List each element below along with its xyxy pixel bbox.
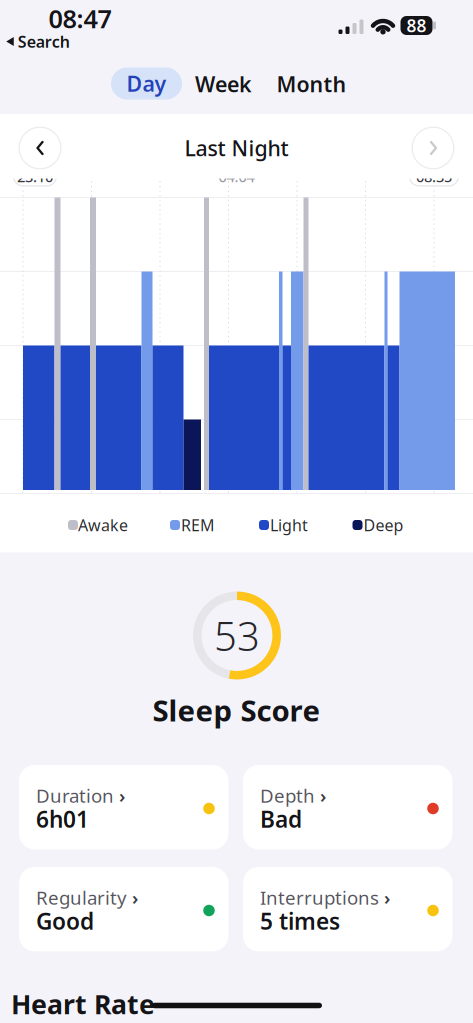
button[interactable]: Month xyxy=(276,70,346,98)
staticText: Week xyxy=(195,70,252,98)
staticText: Search xyxy=(18,31,70,52)
staticText: Duration xyxy=(36,783,114,808)
button[interactable]: Duration xyxy=(19,765,228,849)
staticText: 04:04 xyxy=(218,167,254,186)
button[interactable]: Next night xyxy=(411,126,454,169)
staticText: 53 xyxy=(214,609,260,662)
button[interactable]: Day xyxy=(111,67,182,99)
staticText: Sleep Score xyxy=(152,690,320,729)
staticText: Month xyxy=(276,70,346,98)
staticText: Interruptions xyxy=(260,885,379,910)
staticText: 88 xyxy=(406,14,426,37)
staticText: 23:10 xyxy=(17,167,53,186)
button[interactable]: Back to Search xyxy=(6,31,70,52)
button[interactable]: Previous night xyxy=(18,126,61,169)
staticText: Awake xyxy=(78,514,128,536)
staticText: Heart Rate xyxy=(11,986,155,1022)
staticText: REM xyxy=(181,514,215,536)
staticText: Last Night xyxy=(184,134,288,162)
staticText: Regularity xyxy=(36,885,127,910)
button[interactable]: Interruptions xyxy=(243,867,452,951)
staticText: Day xyxy=(126,69,166,98)
staticText: › xyxy=(119,783,125,808)
staticText: Good xyxy=(36,906,94,936)
staticText: 6h01 xyxy=(36,804,89,834)
staticText: 08:47 xyxy=(48,2,111,35)
button[interactable]: Week xyxy=(195,70,252,98)
button[interactable]: Depth xyxy=(243,765,452,849)
staticText: › xyxy=(384,885,390,910)
staticText: 08:35 xyxy=(416,167,452,186)
staticText: Deep xyxy=(363,514,403,536)
button[interactable]: Regularity xyxy=(19,867,228,951)
staticText: › xyxy=(320,783,326,808)
staticText: Bad xyxy=(260,804,302,834)
staticText: 5 times xyxy=(260,906,340,936)
staticText: Depth xyxy=(260,783,315,808)
staticText: › xyxy=(132,885,138,910)
staticText: Light xyxy=(270,514,308,536)
